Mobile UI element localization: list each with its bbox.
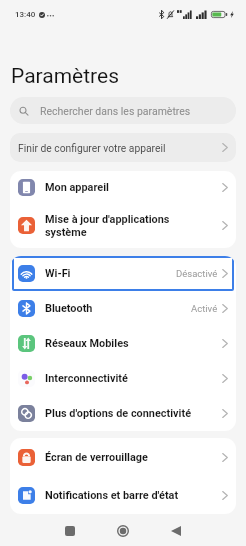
staticText: Bluetooth xyxy=(45,302,191,315)
staticText: Paramètres xyxy=(11,64,120,89)
staticText: Réseaux Mobiles xyxy=(45,337,222,350)
staticText: Notifications et barre d'état xyxy=(45,489,222,502)
staticText: Mise à jour d'applications système xyxy=(45,213,222,238)
button[interactable]: Finir de configurer votre appareil xyxy=(10,133,236,162)
staticText: Plus d'options de connectivité xyxy=(45,407,222,420)
staticText: Écran de verrouillage xyxy=(45,451,222,464)
button[interactable]: Rechercher dans les paramètres xyxy=(10,97,236,124)
staticText: 13:40 xyxy=(15,10,36,19)
button[interactable]: Home xyxy=(108,516,138,546)
staticText: Désactivé xyxy=(176,268,218,279)
button[interactable]: Mon appareil xyxy=(10,171,236,203)
button[interactable]: Plus d'options de connectivité xyxy=(10,396,236,431)
staticText: Wi-Fi xyxy=(45,267,176,280)
button[interactable]: Wi-Fi xyxy=(12,256,234,291)
staticText: Activé xyxy=(191,303,218,314)
button[interactable]: Écran de verrouillage xyxy=(10,438,236,476)
button[interactable]: Réseaux Mobiles xyxy=(10,326,236,361)
staticText: Rechercher dans les paramètres xyxy=(40,105,191,117)
button[interactable]: Interconnectivité xyxy=(10,361,236,396)
button[interactable]: Mise à jour d'applications système xyxy=(10,203,236,248)
staticText: Interconnectivité xyxy=(45,372,222,385)
button[interactable]: Back xyxy=(161,516,191,546)
staticText: Finir de configurer votre appareil xyxy=(18,142,166,154)
staticText: Mon appareil xyxy=(45,181,222,194)
button[interactable]: Notifications et barre d'état xyxy=(10,476,236,514)
button[interactable]: Recent apps xyxy=(55,516,85,546)
button[interactable]: Bluetooth xyxy=(10,291,236,326)
